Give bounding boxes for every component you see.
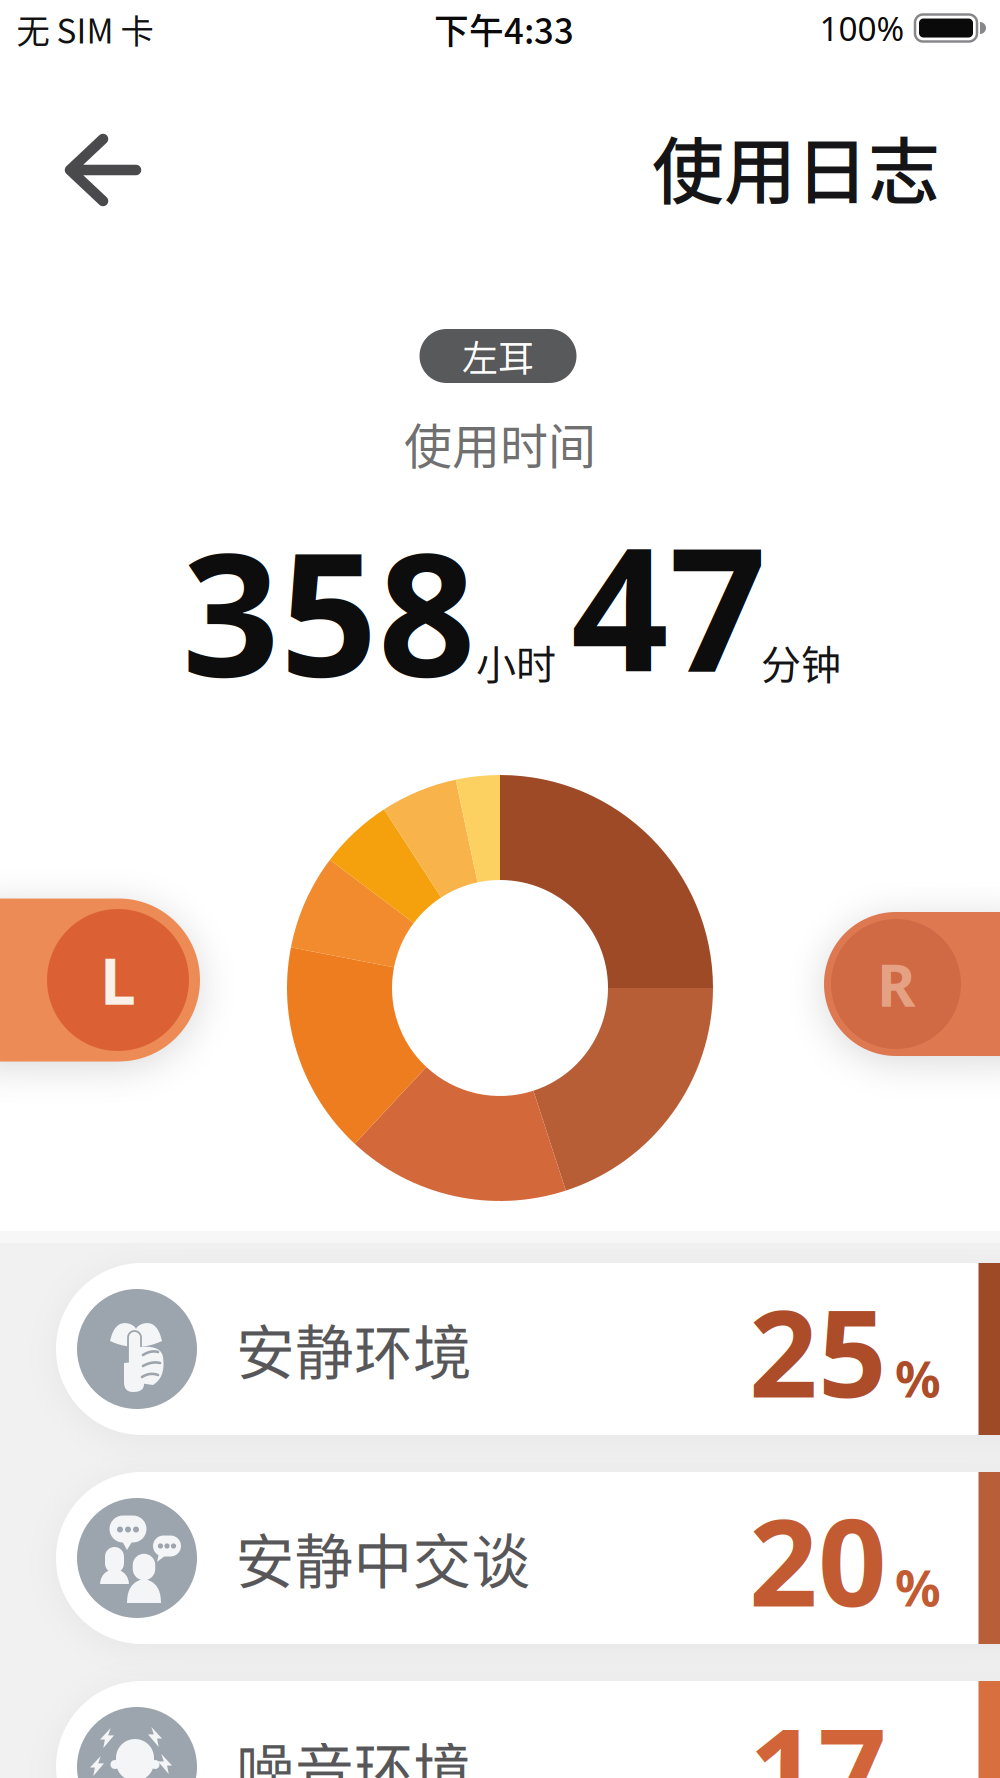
staticText: 分钟: [761, 633, 841, 691]
staticText: 使用时间: [404, 408, 596, 478]
staticText: 使用日志: [652, 114, 940, 218]
staticText: 安静中交谈: [235, 1515, 530, 1600]
staticText: 20: [749, 1480, 887, 1640]
staticText: %: [895, 1553, 941, 1621]
staticText: 安静环境: [236, 1306, 472, 1391]
staticText: 小时: [476, 633, 556, 691]
button[interactable]: Right ear: [824, 912, 1000, 1056]
staticText: %: [895, 1344, 941, 1412]
staticText: 358: [182, 497, 476, 723]
staticText: 17: [749, 1689, 887, 1778]
staticText: 左耳: [462, 330, 534, 382]
staticText: 噪音环境: [236, 1724, 472, 1778]
button[interactable]: Back: [49, 115, 159, 225]
button[interactable]: 左耳: [419, 329, 576, 383]
staticText: 无 SIM 卡: [16, 5, 153, 53]
staticText: 下午4:33: [434, 4, 574, 54]
button[interactable]: Left ear: [0, 898, 200, 1061]
staticText: R: [877, 945, 915, 1023]
staticText: 100%: [819, 6, 904, 50]
staticText: 47: [571, 492, 767, 718]
staticText: 25: [749, 1271, 887, 1431]
staticText: L: [100, 937, 136, 1022]
